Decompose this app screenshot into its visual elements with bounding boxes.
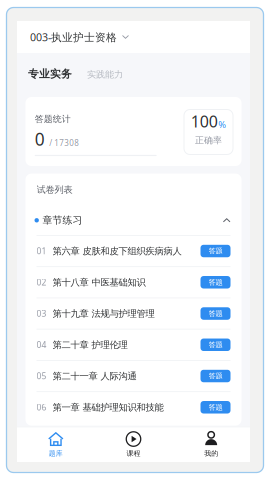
staticText: 正确率 [195, 135, 222, 146]
staticText: 05 [36, 370, 46, 382]
staticText: 第二十章 护理伦理 [52, 339, 127, 351]
button[interactable]: 课程 [95, 427, 172, 462]
staticText: 第六章 皮肤和皮下组织疾病病人 [52, 245, 181, 257]
staticText: 答题 [208, 246, 222, 256]
staticText: 章节练习 [42, 214, 82, 226]
staticText: 第十九章 法规与护理管理 [52, 308, 154, 319]
staticText: 003-执业护士资格 [30, 30, 117, 44]
staticText: 我的 [204, 449, 218, 458]
staticText: 04 [36, 339, 46, 351]
staticText: 0 [35, 127, 45, 151]
staticText: 答题 [208, 278, 222, 287]
staticText: 答题 [208, 403, 222, 412]
staticText: 06 [36, 401, 46, 413]
button[interactable]: 06 [36, 392, 230, 422]
staticText: 100 [191, 110, 218, 132]
button[interactable]: 我的 [172, 427, 250, 462]
button[interactable]: 04 [36, 330, 230, 360]
staticText: 试卷列表 [36, 184, 72, 195]
button[interactable]: 题库 [17, 427, 95, 462]
button[interactable]: 02 [36, 267, 230, 297]
staticText: 第一章 基础护理知识和技能 [52, 401, 163, 413]
staticText: 答题 [208, 371, 222, 381]
staticText: 第十八章 中医基础知识 [52, 276, 145, 288]
button[interactable]: 01 [36, 236, 230, 266]
staticText: 01 [36, 245, 46, 257]
staticText: 答题统计 [35, 113, 71, 125]
staticText: 实践能力 [87, 69, 123, 80]
staticText: 答题 [208, 340, 222, 349]
staticText: 答题 [208, 309, 222, 318]
button[interactable]: 03 [36, 298, 230, 329]
staticText: 02 [36, 276, 46, 288]
staticText: / 17308 [49, 137, 79, 148]
button[interactable]: 05 [36, 361, 230, 391]
staticText: 题库 [49, 449, 63, 458]
staticText: 03 [36, 308, 46, 319]
staticText: % [218, 118, 226, 131]
staticText: 第二十一章 人际沟通 [52, 370, 136, 382]
button[interactable]: 章节练习 [36, 206, 230, 235]
staticText: 课程 [126, 449, 140, 458]
button[interactable]: 003-执业护士资格 [17, 21, 250, 53]
button[interactable]: 实践能力 [72, 69, 123, 80]
staticText: 专业实务 [28, 67, 72, 81]
button[interactable]: 专业实务 [28, 67, 72, 81]
